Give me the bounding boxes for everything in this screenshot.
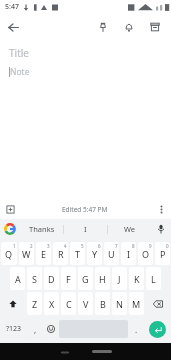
button[interactable]: Backspace: [146, 292, 170, 315]
button[interactable]: Pin note: [90, 14, 116, 40]
staticText: D: [48, 273, 55, 285]
staticText: K: [134, 273, 140, 285]
staticText: 1: [13, 243, 16, 249]
staticText: S: [32, 273, 37, 285]
staticText: L: [151, 273, 156, 285]
staticText: J: [118, 273, 121, 285]
staticText: I: [84, 224, 87, 234]
button[interactable]: R: [53, 242, 68, 265]
button[interactable]: Z: [27, 292, 42, 315]
button[interactable]: Thanks: [20, 219, 63, 239]
button[interactable]: Y: [87, 242, 102, 265]
staticText: R: [58, 248, 64, 260]
button[interactable]: Note: [9, 66, 162, 78]
staticText: We: [124, 224, 136, 234]
button[interactable]: ,: [29, 318, 42, 340]
staticText: C: [66, 298, 72, 310]
staticText: X: [49, 298, 55, 310]
button[interactable]: G: [78, 267, 93, 290]
button[interactable]: J: [112, 267, 127, 290]
staticText: .: [135, 324, 138, 335]
staticText: B: [100, 298, 106, 310]
staticText: ,: [34, 324, 37, 335]
button[interactable]: C: [61, 292, 76, 315]
button[interactable]: W: [19, 242, 34, 265]
button[interactable]: Archive: [142, 14, 168, 40]
staticText: Title: [9, 46, 29, 60]
staticText: Edited 5:47 PM: [62, 205, 108, 214]
staticText: Q: [5, 248, 13, 260]
staticText: 5: [81, 243, 84, 249]
button[interactable]: Voice input: [151, 219, 171, 239]
button[interactable]: V: [78, 292, 93, 315]
staticText: G: [82, 273, 89, 285]
staticText: W: [22, 248, 31, 260]
button[interactable]: N: [112, 292, 127, 315]
staticText: Y: [92, 248, 98, 260]
button[interactable]: D: [44, 267, 59, 290]
staticText: 0: [166, 243, 169, 249]
button[interactable]: Title: [9, 46, 162, 60]
button[interactable]: A: [10, 267, 25, 290]
staticText: 8: [132, 243, 135, 249]
staticText: T: [75, 248, 81, 260]
staticText: 7: [115, 243, 118, 249]
button[interactable]: T: [70, 242, 85, 265]
button[interactable]: X: [44, 292, 59, 315]
staticText: 5:47: [5, 2, 19, 12]
staticText: O: [142, 248, 150, 260]
staticText: H: [99, 273, 106, 285]
button[interactable]: E: [36, 242, 51, 265]
button[interactable]: Enter: [149, 321, 166, 338]
button[interactable]: Emoji: [44, 318, 57, 340]
staticText: U: [108, 248, 115, 260]
button[interactable]: Reminder: [116, 14, 142, 40]
button[interactable]: M: [129, 292, 144, 315]
staticText: A: [15, 273, 21, 285]
button[interactable]: Back: [60, 349, 70, 355]
button[interactable]: Google search: [0, 219, 20, 239]
button[interactable]: O: [138, 242, 153, 265]
button[interactable]: H: [95, 267, 110, 290]
button[interactable]: Home: [92, 350, 112, 353]
staticText: Z: [32, 298, 38, 310]
button[interactable]: P: [155, 242, 170, 265]
staticText: 9: [149, 243, 152, 249]
button[interactable]: Back: [0, 14, 26, 40]
button[interactable]: Q: [1, 242, 17, 265]
button[interactable]: I: [121, 242, 136, 265]
button[interactable]: S: [27, 267, 42, 290]
button[interactable]: Shift: [1, 292, 25, 315]
button[interactable]: Add: [0, 199, 20, 219]
button[interactable]: L: [146, 267, 161, 290]
button[interactable]: B: [95, 292, 110, 315]
staticText: Thanks: [29, 224, 55, 234]
button[interactable]: More options: [151, 199, 171, 219]
staticText: 3: [47, 243, 50, 249]
staticText: V: [83, 298, 89, 310]
staticText: M: [132, 298, 141, 310]
button[interactable]: U: [104, 242, 119, 265]
staticText: F: [66, 273, 71, 285]
staticText: N: [116, 298, 123, 310]
button[interactable]: .: [130, 318, 143, 340]
staticText: 6: [98, 243, 101, 249]
staticText: E: [41, 248, 47, 260]
staticText: ?123: [6, 324, 22, 334]
staticText: P: [160, 248, 166, 260]
button[interactable]: K: [129, 267, 144, 290]
staticText: 2: [30, 243, 33, 249]
button[interactable]: We: [108, 219, 151, 239]
button[interactable]: I: [64, 219, 107, 239]
staticText: 4: [64, 243, 67, 249]
staticText: Note: [10, 66, 30, 78]
staticText: I: [127, 248, 131, 260]
button[interactable]: ?123: [1, 318, 27, 340]
button[interactable]: F: [61, 267, 76, 290]
